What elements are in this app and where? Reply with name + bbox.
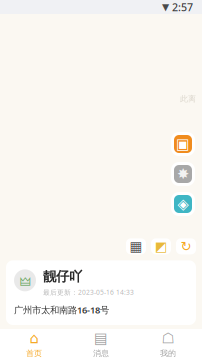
- staticText: 2:57: [172, 0, 193, 14]
- staticText: ☖: [161, 330, 174, 346]
- button[interactable]: ☖: [134, 329, 201, 359]
- staticText: ↻: [180, 239, 191, 254]
- button[interactable]: 🜲: [6, 260, 196, 325]
- staticText: ▤: [94, 330, 108, 346]
- button[interactable]: Locate: [171, 162, 195, 186]
- button[interactable]: Refresh: [176, 238, 196, 254]
- staticText: 最后更新：2023-05-16 14:33: [43, 288, 134, 297]
- staticText: 靓仔吖: [43, 268, 82, 285]
- staticText: ⌂: [29, 330, 38, 346]
- button[interactable]: ⌂: [0, 329, 67, 359]
- staticText: 消息: [93, 348, 109, 358]
- button[interactable]: Layers: [126, 238, 146, 254]
- staticText: 🜲: [19, 268, 30, 292]
- button[interactable]: Explore: [171, 192, 195, 216]
- staticText: ◩: [154, 239, 167, 254]
- staticText: ▦: [129, 239, 142, 254]
- staticText: ✸: [177, 166, 189, 182]
- staticText: ▣: [176, 136, 190, 152]
- staticText: 首页: [26, 348, 42, 358]
- button[interactable]: Grid: [151, 238, 171, 254]
- button[interactable]: Camera: [171, 132, 195, 156]
- staticText: 此离: [180, 94, 196, 104]
- staticText: ◈: [177, 196, 188, 212]
- staticText: 我的: [160, 348, 176, 358]
- staticText: ▼: [162, 2, 169, 12]
- button[interactable]: ▤: [67, 329, 134, 359]
- staticText: 广州市太和南路16-18号: [14, 304, 109, 316]
